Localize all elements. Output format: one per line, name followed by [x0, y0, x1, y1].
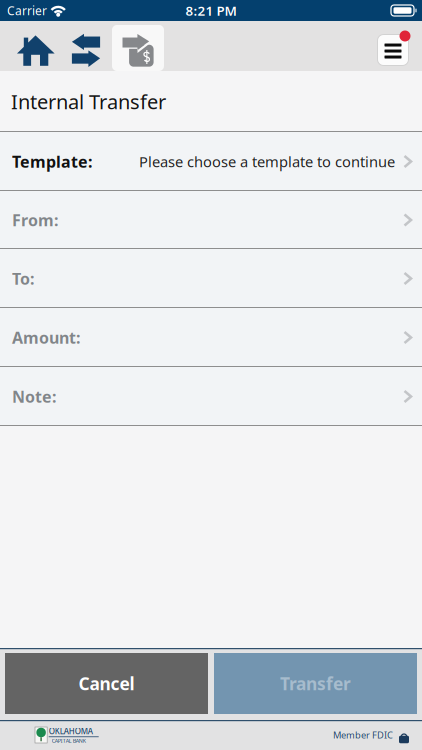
button[interactable]: Amount: — [0, 308, 422, 367]
staticText: Transfer — [280, 672, 351, 695]
button[interactable]: Home — [8, 21, 60, 71]
staticText: Amount: — [12, 327, 80, 348]
staticText: From: — [12, 209, 58, 231]
staticText: To: — [12, 268, 34, 289]
button[interactable]: From: — [0, 191, 422, 249]
staticText: Internal Transfer — [11, 88, 166, 115]
button[interactable]: To: — [0, 249, 422, 308]
staticText: 8:21 PM — [185, 2, 236, 19]
button[interactable]: Menu — [376, 26, 410, 65]
staticText: Member FDIC — [333, 729, 393, 741]
button[interactable]: Internal Transfer — [112, 21, 164, 71]
staticText: Carrier — [7, 2, 47, 18]
button[interactable]: Transfers — [60, 21, 112, 71]
staticText: Note: — [12, 386, 56, 407]
button[interactable]: Template: — [0, 132, 422, 191]
button[interactable]: Note: — [0, 367, 422, 426]
staticText: Template: — [12, 151, 92, 172]
staticText: Please choose a template to continue — [139, 152, 395, 171]
button[interactable]: Cancel — [5, 653, 208, 714]
button[interactable]: Transfer — [214, 653, 417, 714]
staticText: Cancel — [78, 672, 134, 695]
staticText: CAPITAL BANK — [52, 737, 86, 744]
staticText: OKLAHOMA — [49, 726, 93, 736]
